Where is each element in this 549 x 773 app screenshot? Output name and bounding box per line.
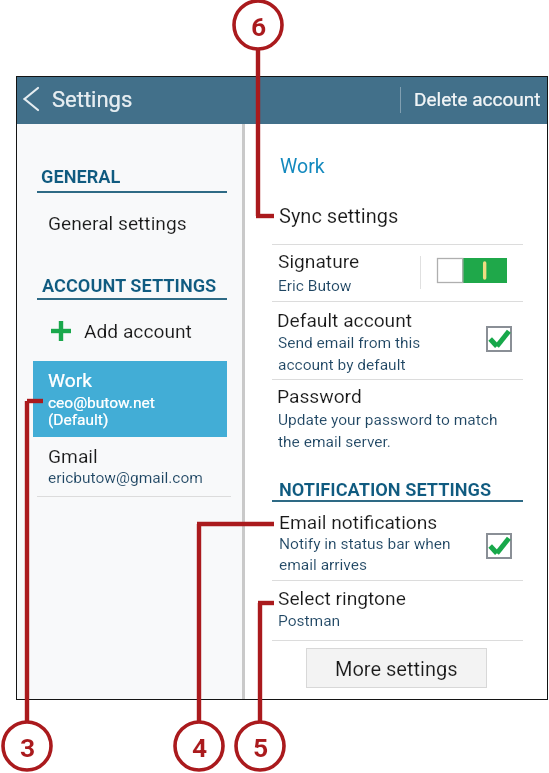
button[interactable]: Signature (245, 245, 529, 301)
staticText: Postman (278, 612, 341, 630)
staticText: Sync settings (279, 204, 399, 227)
staticText: ceo@butow.net (48, 394, 155, 412)
staticText: 5 (253, 732, 269, 763)
button[interactable]: Gmail (16, 440, 242, 494)
staticText: Settings (52, 87, 133, 113)
staticText: the email server. (278, 433, 391, 451)
button[interactable]: Enabled checkbox (486, 533, 512, 559)
staticText: Notify in status bar when (279, 535, 451, 553)
staticText: NOTIFICATION SETTINGS (279, 479, 492, 500)
button[interactable]: Enabled checkbox (486, 326, 512, 352)
staticText: Select ringtone (278, 587, 406, 610)
button[interactable]: More settings (306, 648, 487, 688)
button[interactable]: Select ringtone (245, 581, 529, 640)
button[interactable]: Default account (245, 302, 529, 379)
button[interactable]: Signature on (437, 258, 507, 283)
staticText: Delete account (414, 88, 541, 110)
staticText: 6 (251, 11, 267, 42)
staticText: Gmail (48, 445, 98, 468)
staticText: Update your password to match (278, 411, 498, 429)
staticText: (Default) (48, 411, 109, 429)
button[interactable]: Password (245, 380, 529, 456)
staticText: email arrives (279, 556, 367, 574)
staticText: Add account (84, 320, 192, 343)
staticText: Password (277, 385, 362, 408)
staticText: account by default (278, 356, 406, 374)
staticText: More settings (335, 657, 458, 680)
staticText: General settings (48, 212, 187, 235)
staticText: Signature (278, 250, 360, 273)
button[interactable]: Email notifications (245, 508, 529, 580)
button[interactable]: Delete account (406, 76, 548, 124)
staticText: Work (48, 369, 92, 392)
staticText: Eric Butow (278, 277, 352, 295)
button[interactable]: General settings (16, 202, 242, 238)
staticText: Default account (277, 309, 413, 332)
staticText: Send email from this (278, 334, 421, 352)
staticText: 4 (192, 732, 208, 763)
button[interactable]: Add account (16, 310, 242, 350)
staticText: GENERAL (41, 166, 121, 187)
staticText: 3 (20, 732, 36, 763)
staticText: ACCOUNT SETTINGS (42, 275, 217, 296)
button[interactable]: Back to Settings (16, 76, 156, 124)
staticText: Work (280, 155, 325, 178)
staticText: ericbutow@gmail.com (48, 469, 203, 487)
staticText: Email notifications (279, 511, 438, 534)
button[interactable]: Work (33, 361, 227, 437)
